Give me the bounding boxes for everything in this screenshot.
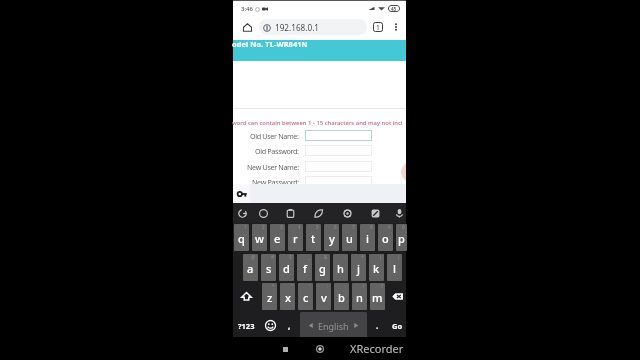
staticText: 1 xyxy=(244,224,247,230)
button[interactable]: 3 xyxy=(270,224,285,251)
button[interactable]: 2 xyxy=(252,224,267,251)
button[interactable]: ! xyxy=(352,283,367,310)
button[interactable] xyxy=(305,130,372,141)
button[interactable]: 5 xyxy=(306,224,321,251)
staticText: ! xyxy=(363,283,365,289)
button[interactable]: Shift xyxy=(233,283,259,310)
button[interactable] xyxy=(305,176,372,187)
button[interactable]: 1 xyxy=(234,224,249,251)
button[interactable]: 9 xyxy=(378,224,393,251)
button[interactable]: Translate xyxy=(367,205,383,221)
button[interactable]: ? xyxy=(370,283,385,310)
button[interactable]: . xyxy=(370,312,385,339)
staticText: , xyxy=(288,320,291,331)
staticText: 45 xyxy=(391,6,397,12)
staticText: v xyxy=(321,290,327,305)
button[interactable]: Backspace xyxy=(388,283,406,310)
button[interactable]: 8 xyxy=(360,224,375,251)
button[interactable]: @ xyxy=(243,254,258,281)
staticText: _ xyxy=(308,254,310,260)
staticText: h xyxy=(337,261,344,276)
staticText: e xyxy=(274,231,281,246)
staticText: word can contain between 1 - 15 characte… xyxy=(232,119,403,127)
button[interactable]: 4 xyxy=(288,224,303,251)
staticText: @ xyxy=(251,254,256,260)
staticText: : xyxy=(327,283,329,289)
staticText: ? xyxy=(381,283,383,289)
staticText: English xyxy=(318,320,349,332)
staticText: odel No. TL-WR841N xyxy=(232,39,308,49)
button[interactable]: # xyxy=(261,254,276,281)
button[interactable]: Emoji xyxy=(262,312,279,339)
staticText: ( xyxy=(380,254,382,260)
staticText: ; xyxy=(345,283,347,289)
staticText: r xyxy=(293,231,298,246)
button[interactable]: , xyxy=(282,312,297,339)
button[interactable]: - xyxy=(333,254,348,281)
button[interactable]: Voice input xyxy=(391,205,407,221)
button[interactable]: 6 xyxy=(324,224,339,251)
staticText: q xyxy=(238,231,245,246)
staticText: p xyxy=(398,231,405,246)
staticText: m xyxy=(372,290,383,305)
button[interactable]: ; xyxy=(334,283,349,310)
staticText: ?123 xyxy=(238,321,255,331)
staticText: Old Password: xyxy=(255,146,299,156)
staticText: l xyxy=(393,261,396,276)
button[interactable]: & xyxy=(315,254,330,281)
staticText: 192.168.0.1 xyxy=(275,22,320,33)
button[interactable]: Clipboard xyxy=(282,205,298,221)
button[interactable]: : xyxy=(316,283,331,310)
staticText: - xyxy=(344,254,346,260)
staticText: . xyxy=(376,320,379,331)
button[interactable]: Tabs xyxy=(369,18,387,36)
button[interactable]: Sticker xyxy=(310,205,326,221)
button[interactable]: Home xyxy=(238,18,256,36)
staticText: 3:46 xyxy=(241,5,253,13)
staticText: 7 xyxy=(352,224,355,230)
staticText: z xyxy=(267,290,273,305)
button[interactable] xyxy=(305,145,372,156)
staticText: XRecorder xyxy=(350,341,404,356)
button[interactable]: + xyxy=(351,254,366,281)
button[interactable]: ' xyxy=(298,283,313,310)
button[interactable]: 192.168.0.1 xyxy=(259,19,367,35)
staticText: d xyxy=(283,261,290,276)
button[interactable]: Home xyxy=(312,341,328,357)
button[interactable]: ) xyxy=(387,254,402,281)
button[interactable]: 0 xyxy=(396,224,407,251)
button[interactable]: 7 xyxy=(342,224,357,251)
button[interactable]: Recents xyxy=(277,341,293,357)
staticText: New User Name: xyxy=(247,162,299,172)
staticText: f xyxy=(303,261,307,276)
button[interactable]: _ xyxy=(297,254,312,281)
staticText: # xyxy=(271,254,274,260)
staticText: 1 xyxy=(376,23,380,32)
staticText: b xyxy=(338,290,345,305)
staticText: 2 xyxy=(262,224,265,230)
button[interactable]: $ xyxy=(279,254,294,281)
button[interactable]: Recorder xyxy=(401,162,406,182)
staticText: 5 xyxy=(316,224,319,230)
staticText: ) xyxy=(398,254,400,260)
staticText: + xyxy=(361,254,364,260)
staticText: s xyxy=(266,261,272,276)
staticText: ' xyxy=(309,283,311,289)
button[interactable]: Assistant xyxy=(234,205,250,221)
button[interactable]: Theme xyxy=(339,205,355,221)
button[interactable]: Space xyxy=(300,312,367,339)
staticText: u xyxy=(346,231,353,246)
button[interactable] xyxy=(305,161,372,172)
button[interactable]: Go xyxy=(388,312,406,339)
button[interactable]: ?123 xyxy=(233,312,259,339)
button[interactable]: * xyxy=(262,283,277,310)
button[interactable]: " xyxy=(280,283,295,310)
button[interactable]: GIF xyxy=(255,205,271,221)
staticText: New Password: xyxy=(252,177,299,187)
staticText: i xyxy=(366,231,369,246)
staticText: t xyxy=(311,231,316,246)
staticText: w xyxy=(255,231,264,246)
button[interactable]: ( xyxy=(369,254,384,281)
button[interactable]: More options xyxy=(387,18,405,36)
staticText: 8 xyxy=(370,224,373,230)
